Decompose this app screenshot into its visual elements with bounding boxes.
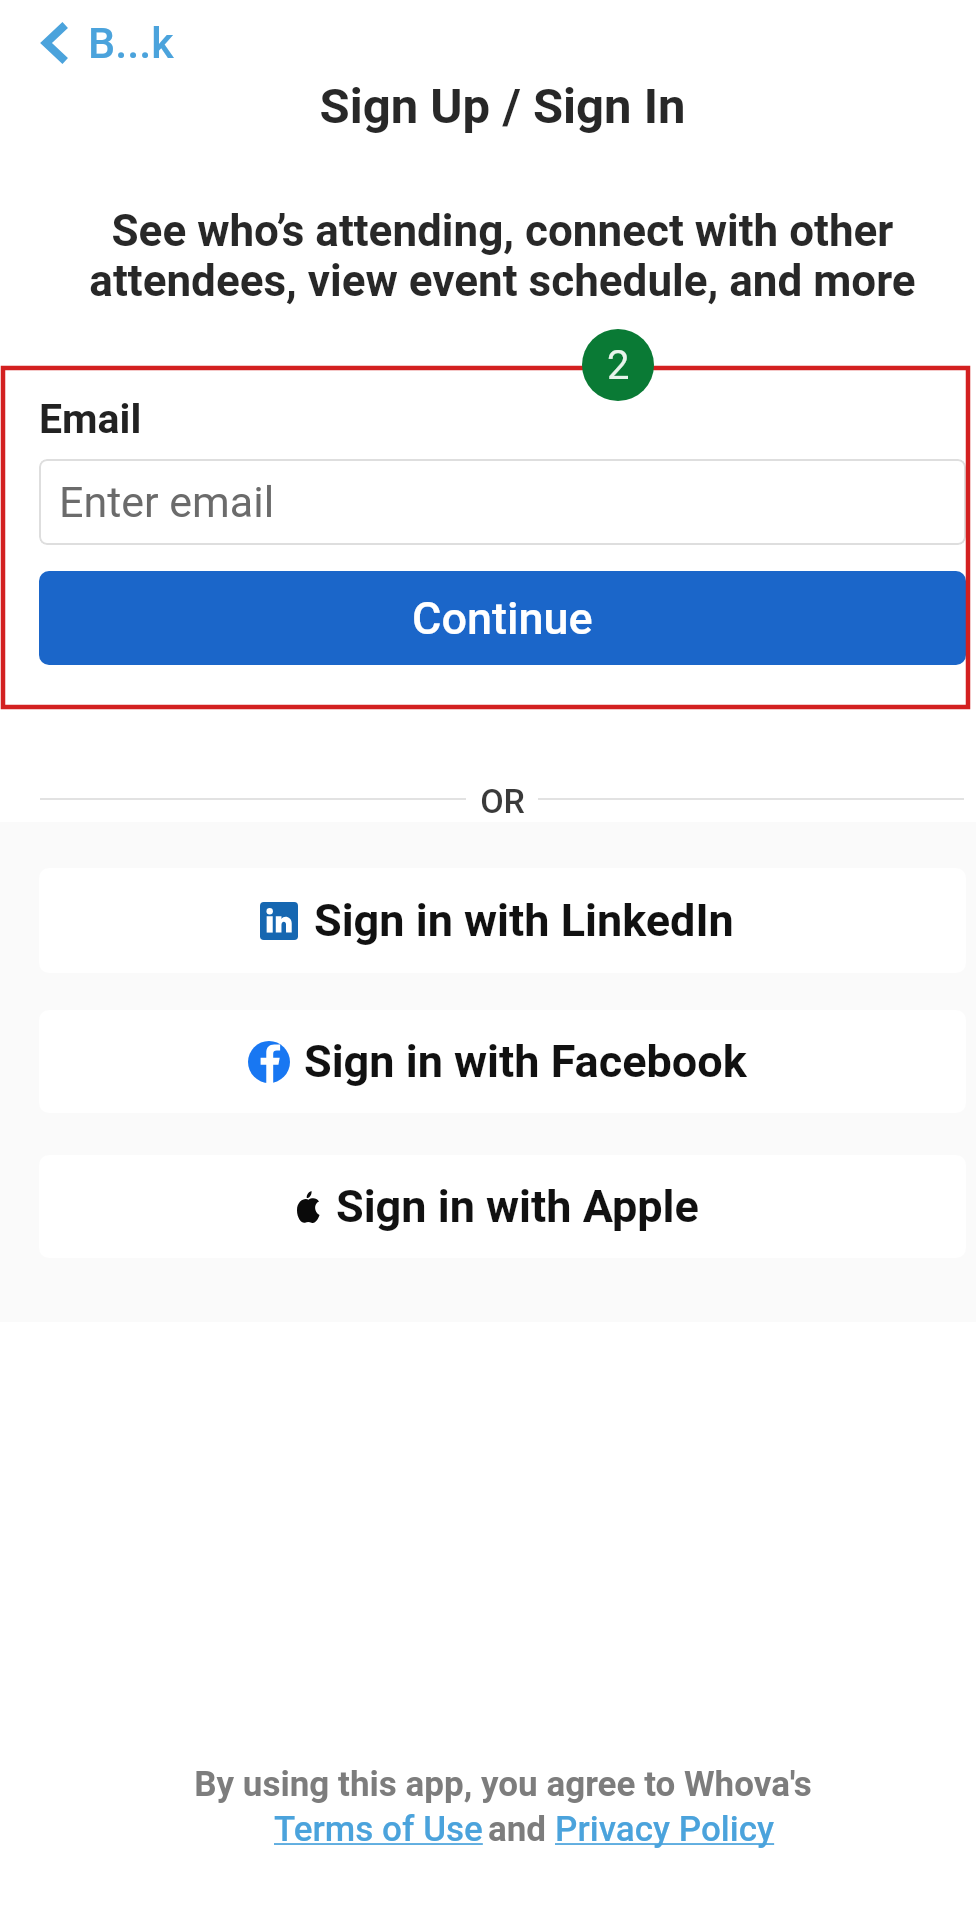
button[interactable]: Privacy Policy [555, 1809, 775, 1850]
staticText: By using this app, you agree to Whova's [194, 1764, 812, 1805]
staticText: Enter email [59, 477, 275, 527]
button[interactable]: Enter email [39, 459, 966, 545]
staticText: Sign Up / Sign In [39, 78, 966, 135]
staticText: Sign in with Facebook [304, 1035, 747, 1088]
other: Back [40, 21, 70, 65]
staticText: Email [39, 395, 142, 443]
staticText: B...k [88, 18, 174, 68]
staticText: 2 [607, 342, 630, 389]
staticText: OR [39, 781, 966, 821]
button[interactable]: Terms of Use [274, 1809, 483, 1850]
button[interactable]: Sign in with Apple [39, 1155, 966, 1258]
staticText: See who’s attending, connect with other … [39, 205, 966, 306]
staticText: Sign in with Apple [336, 1180, 699, 1233]
staticText: and [488, 1809, 555, 1850]
button[interactable]: Sign in with LinkedIn [39, 868, 966, 973]
button[interactable]: Back [32, 12, 182, 74]
staticText: Sign in with LinkedIn [314, 894, 734, 947]
button[interactable]: Continue [39, 571, 966, 665]
staticText: Continue [412, 592, 593, 645]
button[interactable]: Sign in with Facebook [39, 1010, 966, 1113]
